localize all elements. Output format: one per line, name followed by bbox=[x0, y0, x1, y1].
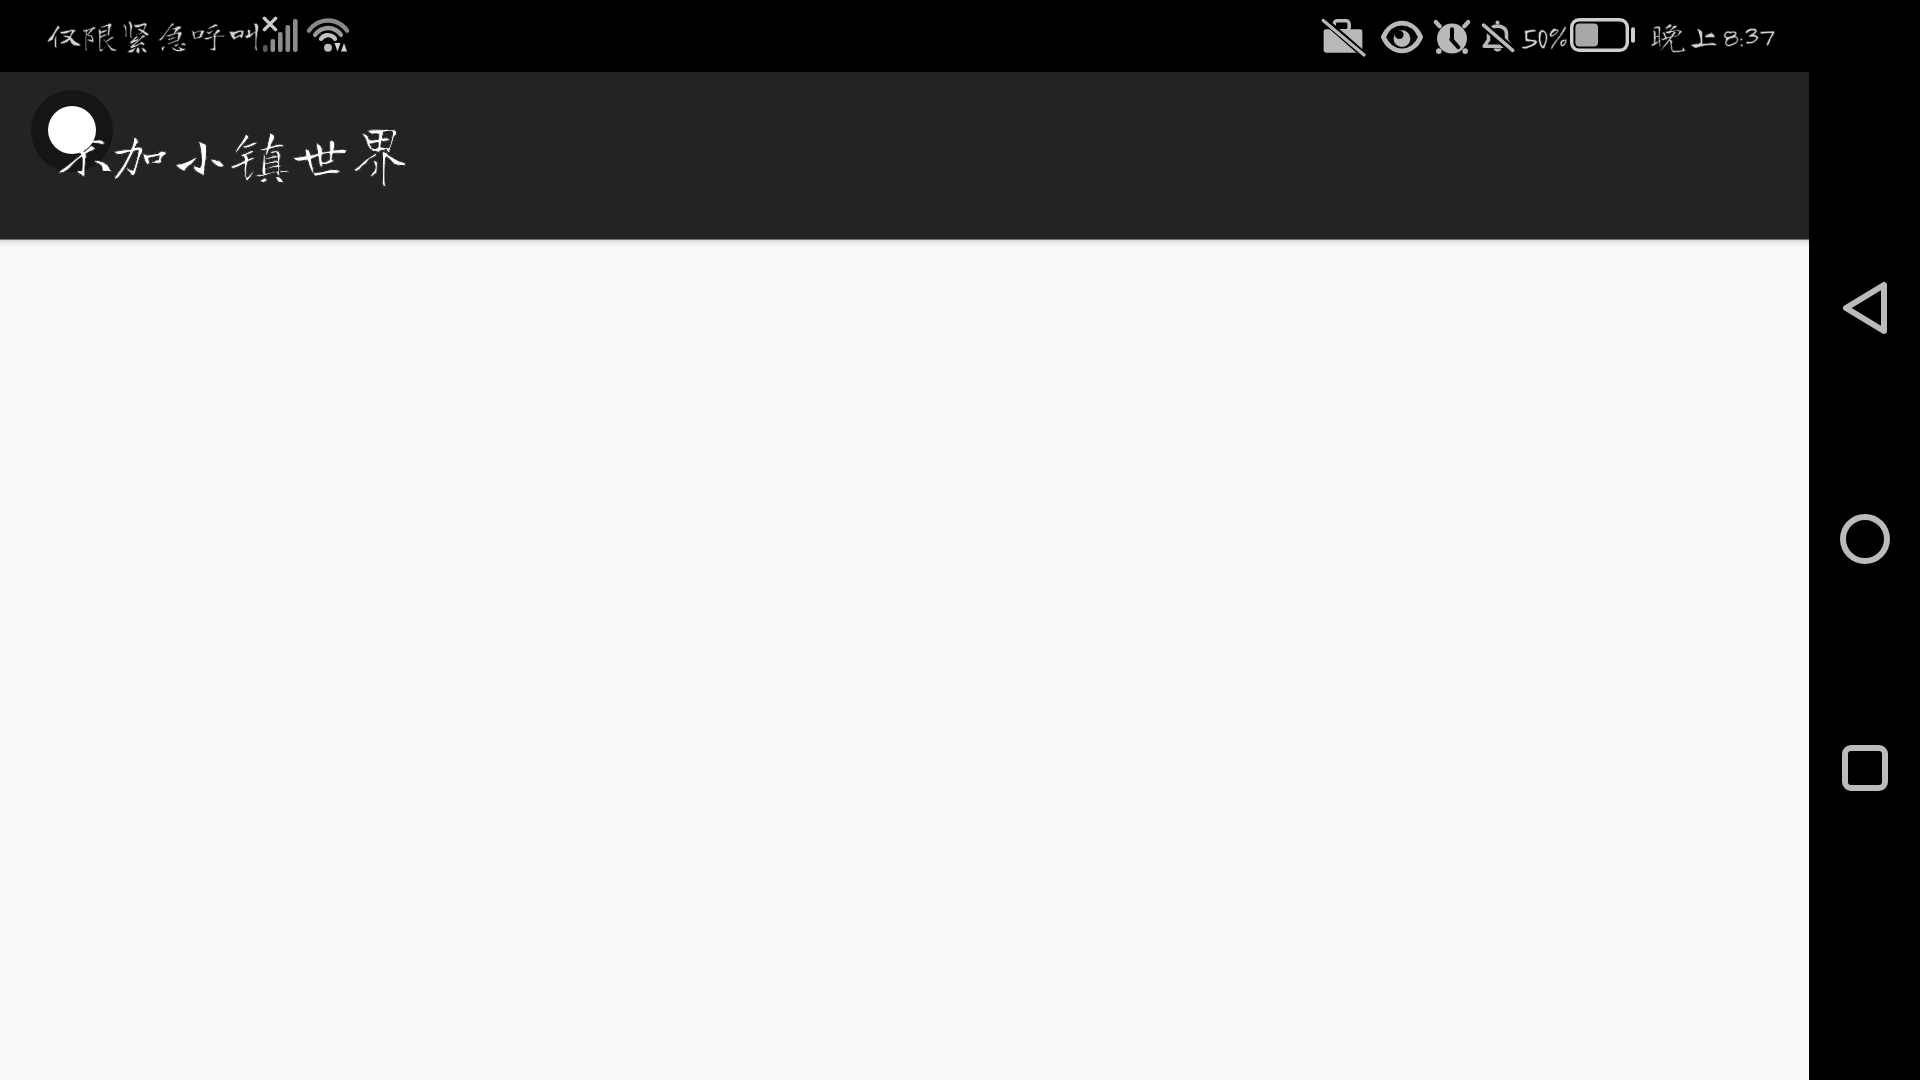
staticText: 50% bbox=[1520, 16, 1567, 57]
staticText: 晚上8:37 bbox=[1650, 17, 1774, 53]
staticText: 加小镇世界 bbox=[110, 123, 410, 183]
staticText: 加小镇世界 bbox=[110, 123, 410, 183]
staticText: 50% bbox=[1520, 16, 1567, 57]
staticText: 不 bbox=[55, 123, 115, 183]
staticText: 晚上8:37 bbox=[1650, 17, 1774, 53]
button[interactable]: Profile avatar bbox=[31, 90, 113, 172]
button[interactable]: Back bbox=[1809, 255, 1920, 361]
staticText: 仅限紧急呼叫 bbox=[46, 16, 263, 52]
button[interactable]: Recent apps bbox=[1809, 715, 1920, 821]
staticText: 不 bbox=[55, 123, 115, 183]
staticText: 仅限紧急呼叫 bbox=[46, 16, 263, 52]
button[interactable]: Home bbox=[1809, 486, 1920, 592]
